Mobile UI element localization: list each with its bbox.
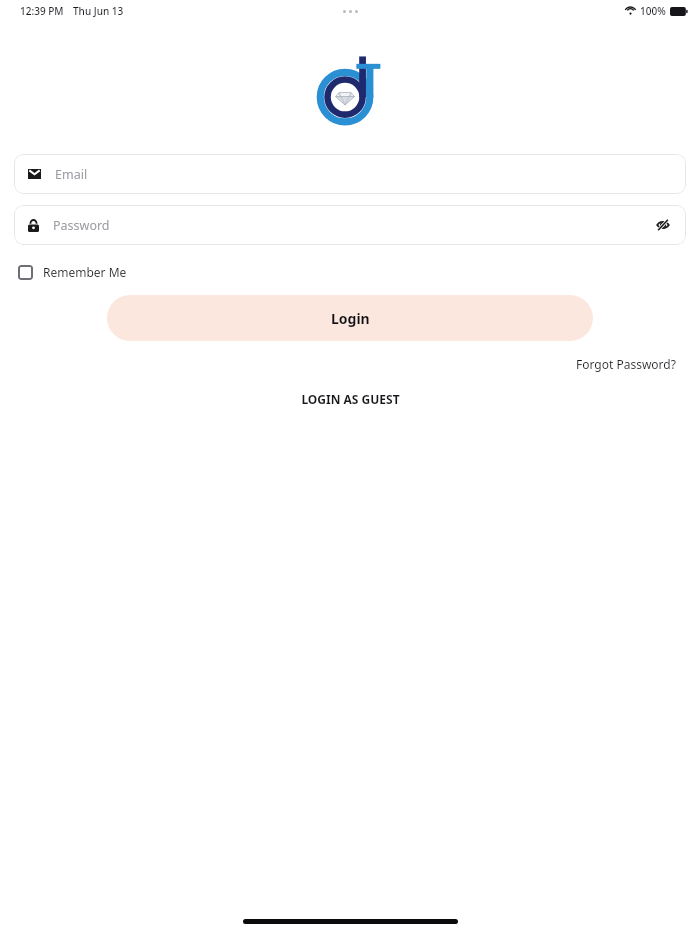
- button[interactable]: LOGIN AS GUEST: [295, 388, 406, 410]
- button[interactable]: Toggle password visibility: [652, 214, 674, 236]
- staticText: LOGIN AS GUEST: [301, 391, 400, 407]
- staticText: 12:39 PM: [20, 4, 64, 18]
- staticText: Forgot Password?: [576, 356, 676, 372]
- staticText: Email: [55, 166, 88, 183]
- staticText: Remember Me: [43, 264, 127, 280]
- button[interactable]: Forgot Password?: [572, 354, 680, 374]
- button[interactable]: Remember Me: [14, 260, 131, 284]
- button[interactable]: Password: [14, 205, 686, 245]
- button[interactable]: Email: [14, 154, 686, 194]
- staticText: Login: [331, 309, 370, 328]
- staticText: Password: [53, 217, 110, 234]
- staticText: 100%: [640, 4, 666, 18]
- staticText: Thu Jun 13: [73, 4, 124, 18]
- button[interactable]: Login: [107, 295, 593, 341]
